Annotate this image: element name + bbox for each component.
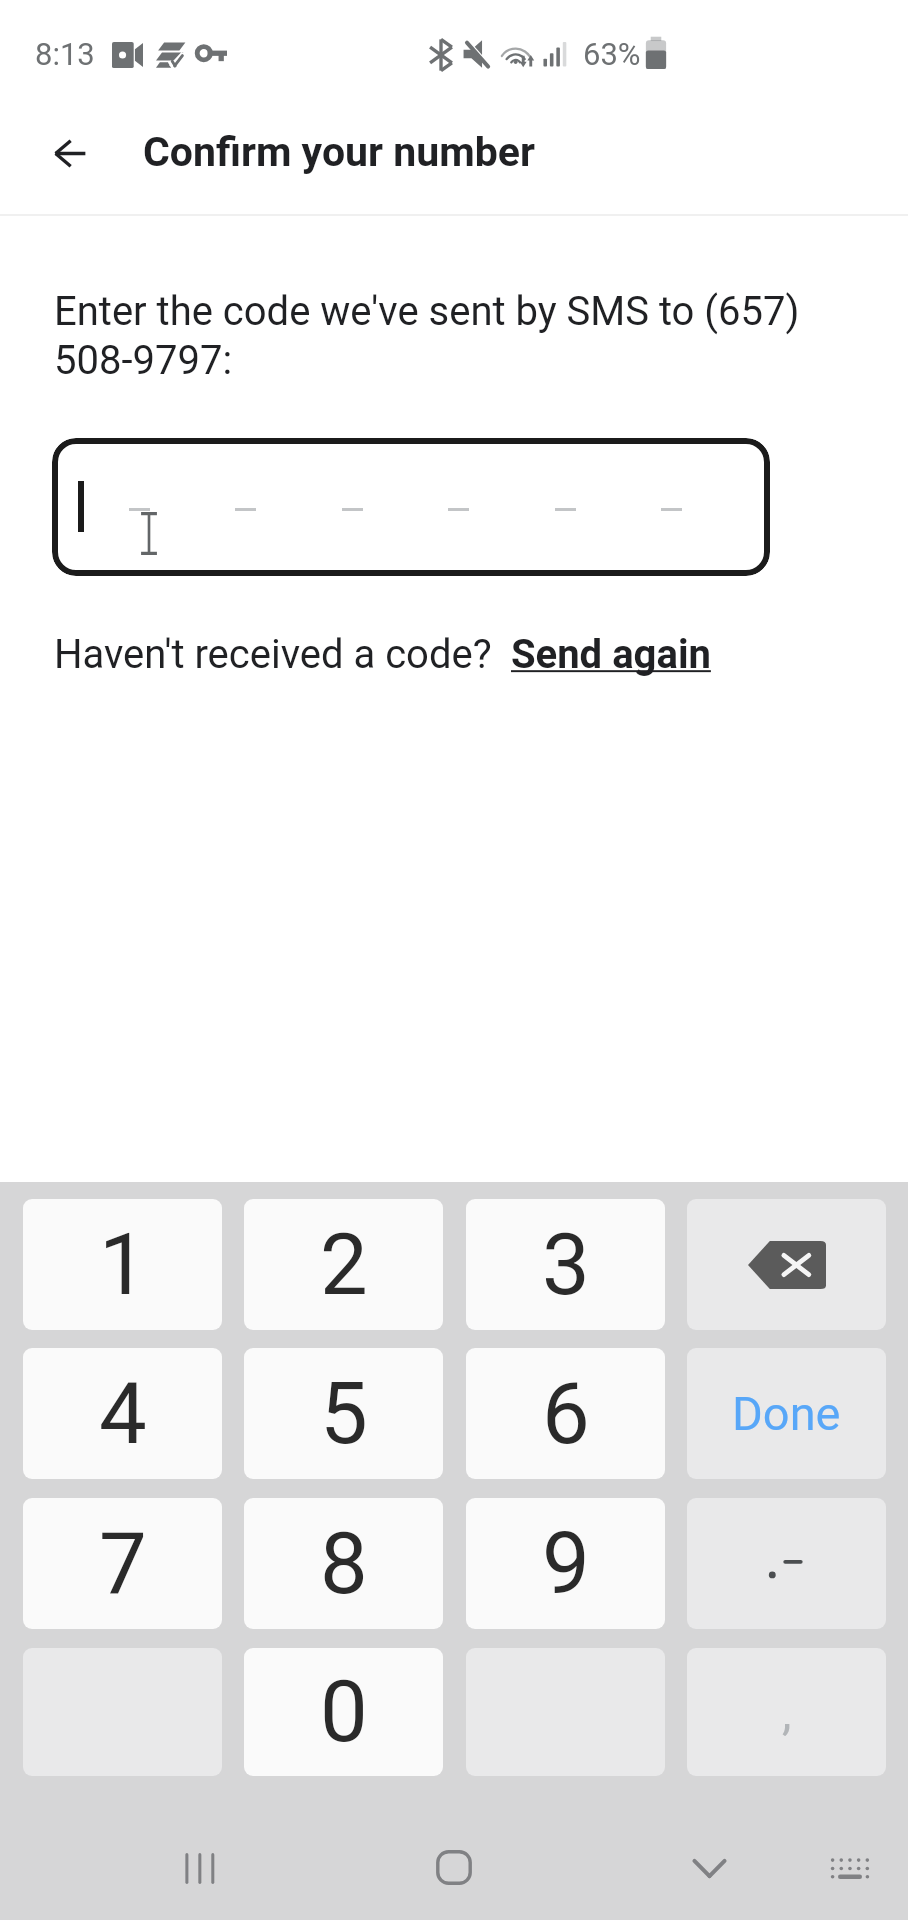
staticText: 1 — [99, 1215, 147, 1315]
button[interactable]: 9 — [466, 1498, 665, 1629]
button[interactable]: 4 — [23, 1348, 222, 1479]
staticText: 4 — [99, 1364, 147, 1464]
button[interactable]: 8 — [244, 1498, 443, 1629]
button[interactable]: Recents — [130, 1808, 270, 1920]
button[interactable]: Home — [384, 1807, 524, 1920]
button[interactable]: Back — [30, 113, 110, 193]
staticText: Send again — [511, 631, 711, 678]
button[interactable]: Hide keyboard — [639, 1808, 779, 1920]
staticText: 8 — [320, 1514, 368, 1614]
button[interactable]: Done — [687, 1348, 886, 1479]
staticText: Confirm your number — [143, 128, 535, 176]
button[interactable]: 6 — [466, 1348, 665, 1479]
staticText: 2 — [320, 1215, 368, 1315]
button[interactable]: Send again — [511, 631, 711, 678]
staticText: 7 — [99, 1514, 147, 1614]
staticText: 6 — [542, 1364, 590, 1464]
button[interactable]: 2 — [244, 1199, 443, 1330]
button[interactable]: 7 — [23, 1498, 222, 1629]
button[interactable]: 3 — [466, 1199, 665, 1330]
staticText: 0 — [320, 1662, 368, 1762]
button[interactable]: .- — [687, 1498, 886, 1629]
staticText: Done — [732, 1386, 841, 1441]
staticText: 63% — [583, 36, 641, 72]
button[interactable]: 1 — [23, 1199, 222, 1330]
button[interactable]: Backspace — [687, 1199, 886, 1330]
button[interactable]: Switch keyboard — [790, 1808, 908, 1920]
staticText: 3 — [542, 1215, 590, 1315]
button[interactable]: Verification code input — [52, 438, 770, 576]
staticText: 9 — [542, 1514, 590, 1614]
staticText: Enter the code we've sent by SMS to (657… — [54, 288, 800, 384]
staticText: Haven't received a code? — [54, 631, 492, 678]
button[interactable]: 0 — [244, 1648, 443, 1776]
staticText: 8:13 — [35, 36, 95, 72]
staticText: , — [782, 1684, 792, 1740]
staticText: 5 — [320, 1364, 368, 1464]
button[interactable]: 5 — [244, 1348, 443, 1479]
